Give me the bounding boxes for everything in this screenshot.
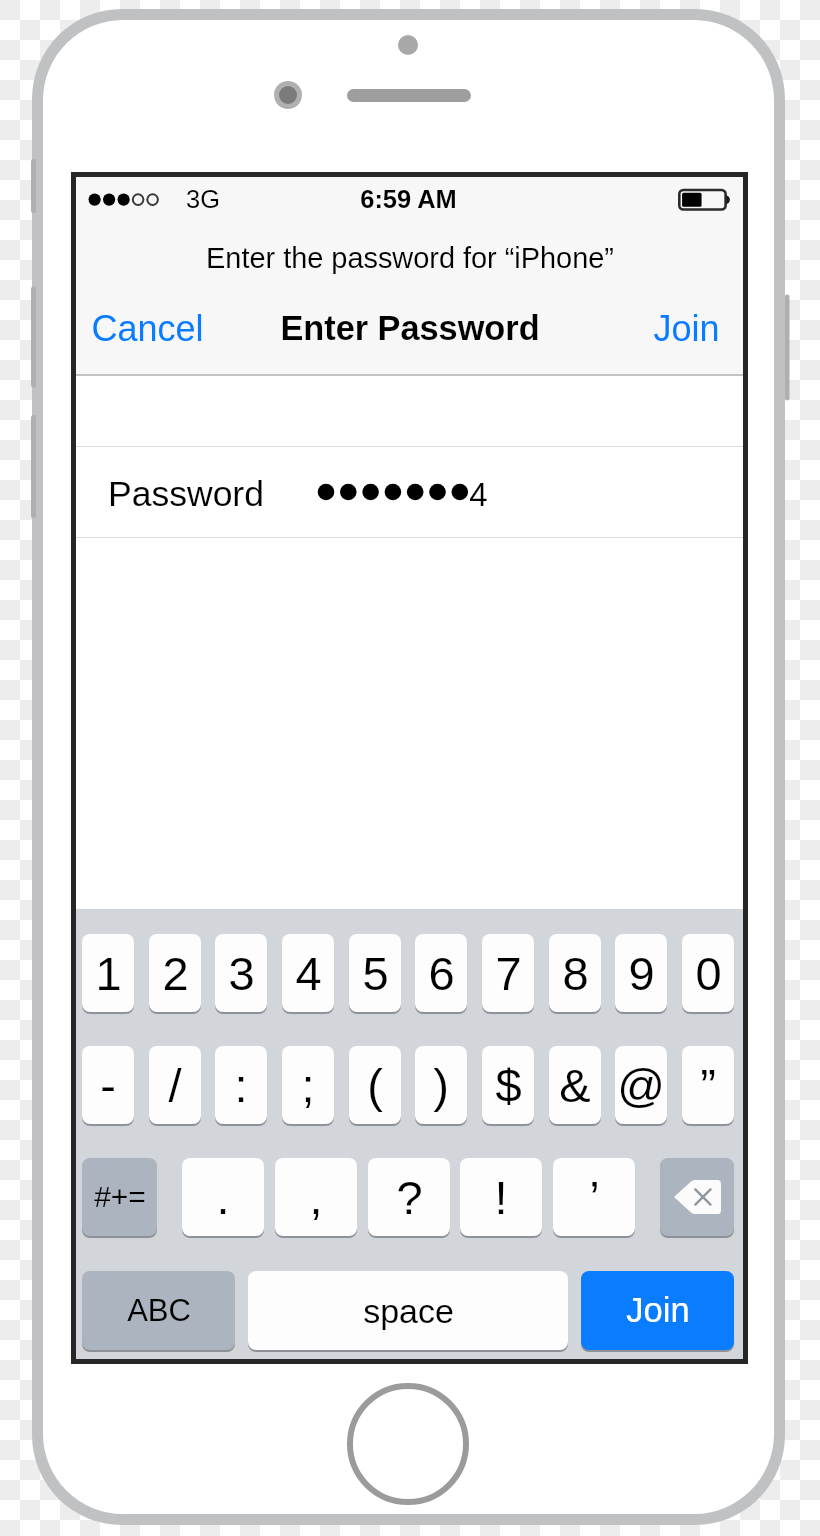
staticText: ): [433, 1059, 449, 1112]
button[interactable]: 3: [215, 934, 267, 1014]
staticText: -: [100, 1059, 116, 1112]
button[interactable]: 7: [482, 934, 534, 1014]
staticText: Join: [653, 308, 720, 348]
button[interactable]: 2: [149, 934, 201, 1014]
button[interactable]: 6: [415, 934, 467, 1014]
button[interactable]: .: [182, 1158, 264, 1238]
button[interactable]: 4: [282, 934, 334, 1014]
button[interactable]: Join: [645, 300, 728, 356]
button[interactable]: Join: [581, 1271, 734, 1352]
staticText: 6:59 AM: [360, 185, 457, 213]
staticText: ;: [301, 1059, 315, 1112]
button[interactable]: space: [248, 1271, 568, 1352]
staticText: space: [363, 1292, 454, 1330]
staticText: ’: [589, 1171, 600, 1224]
staticText: (: [367, 1059, 383, 1112]
button[interactable]: &: [549, 1046, 601, 1126]
staticText: .: [216, 1171, 230, 1224]
staticText: Join: [626, 1291, 690, 1330]
button[interactable]: 9: [615, 934, 667, 1014]
button[interactable]: Password: [76, 447, 743, 537]
staticText: &: [559, 1059, 591, 1112]
button[interactable]: ): [415, 1046, 467, 1126]
staticText: 5: [362, 947, 389, 1000]
staticText: 7: [495, 947, 522, 1000]
staticText: $: [495, 1059, 522, 1112]
staticText: 4: [469, 476, 488, 513]
button[interactable]: ”: [682, 1046, 734, 1126]
staticText: Cancel: [91, 308, 204, 348]
staticText: #+=: [94, 1180, 146, 1214]
staticText: 8: [562, 947, 589, 1000]
button[interactable]: Backspace: [660, 1158, 734, 1238]
button[interactable]: ;: [282, 1046, 334, 1126]
button[interactable]: (: [349, 1046, 401, 1126]
button[interactable]: :: [215, 1046, 267, 1126]
staticText: ”: [700, 1059, 716, 1112]
staticText: /: [168, 1059, 182, 1112]
staticText: Password: [108, 474, 264, 514]
button[interactable]: /: [149, 1046, 201, 1126]
button[interactable]: ABC: [82, 1271, 235, 1352]
staticText: 2: [162, 947, 189, 1000]
button[interactable]: ,: [275, 1158, 357, 1238]
staticText: @: [617, 1059, 665, 1112]
button[interactable]: Cancel: [83, 300, 212, 356]
staticText: !: [494, 1171, 508, 1224]
staticText: 6: [428, 947, 455, 1000]
button[interactable]: @: [615, 1046, 667, 1126]
staticText: :: [234, 1059, 248, 1112]
button[interactable]: -: [82, 1046, 134, 1126]
staticText: Enter the password for “iPhone”: [206, 242, 614, 274]
button[interactable]: 8: [549, 934, 601, 1014]
button[interactable]: 0: [682, 934, 734, 1014]
staticText: 9: [628, 947, 655, 1000]
staticText: 0: [695, 947, 722, 1000]
staticText: ABC: [127, 1293, 191, 1328]
staticText: Enter Password: [280, 309, 540, 347]
button[interactable]: ?: [368, 1158, 450, 1238]
staticText: ?: [396, 1171, 423, 1224]
button[interactable]: #+=: [82, 1158, 157, 1238]
staticText: 3G: [186, 185, 220, 213]
staticText: 3: [228, 947, 255, 1000]
button[interactable]: 1: [82, 934, 134, 1014]
button[interactable]: 5: [349, 934, 401, 1014]
button[interactable]: ’: [553, 1158, 635, 1238]
staticText: 4: [295, 947, 322, 1000]
staticText: 1: [95, 947, 122, 1000]
staticText: ,: [309, 1171, 323, 1224]
button[interactable]: !: [460, 1158, 542, 1238]
button[interactable]: $: [482, 1046, 534, 1126]
other: Backspace: [674, 1180, 721, 1214]
